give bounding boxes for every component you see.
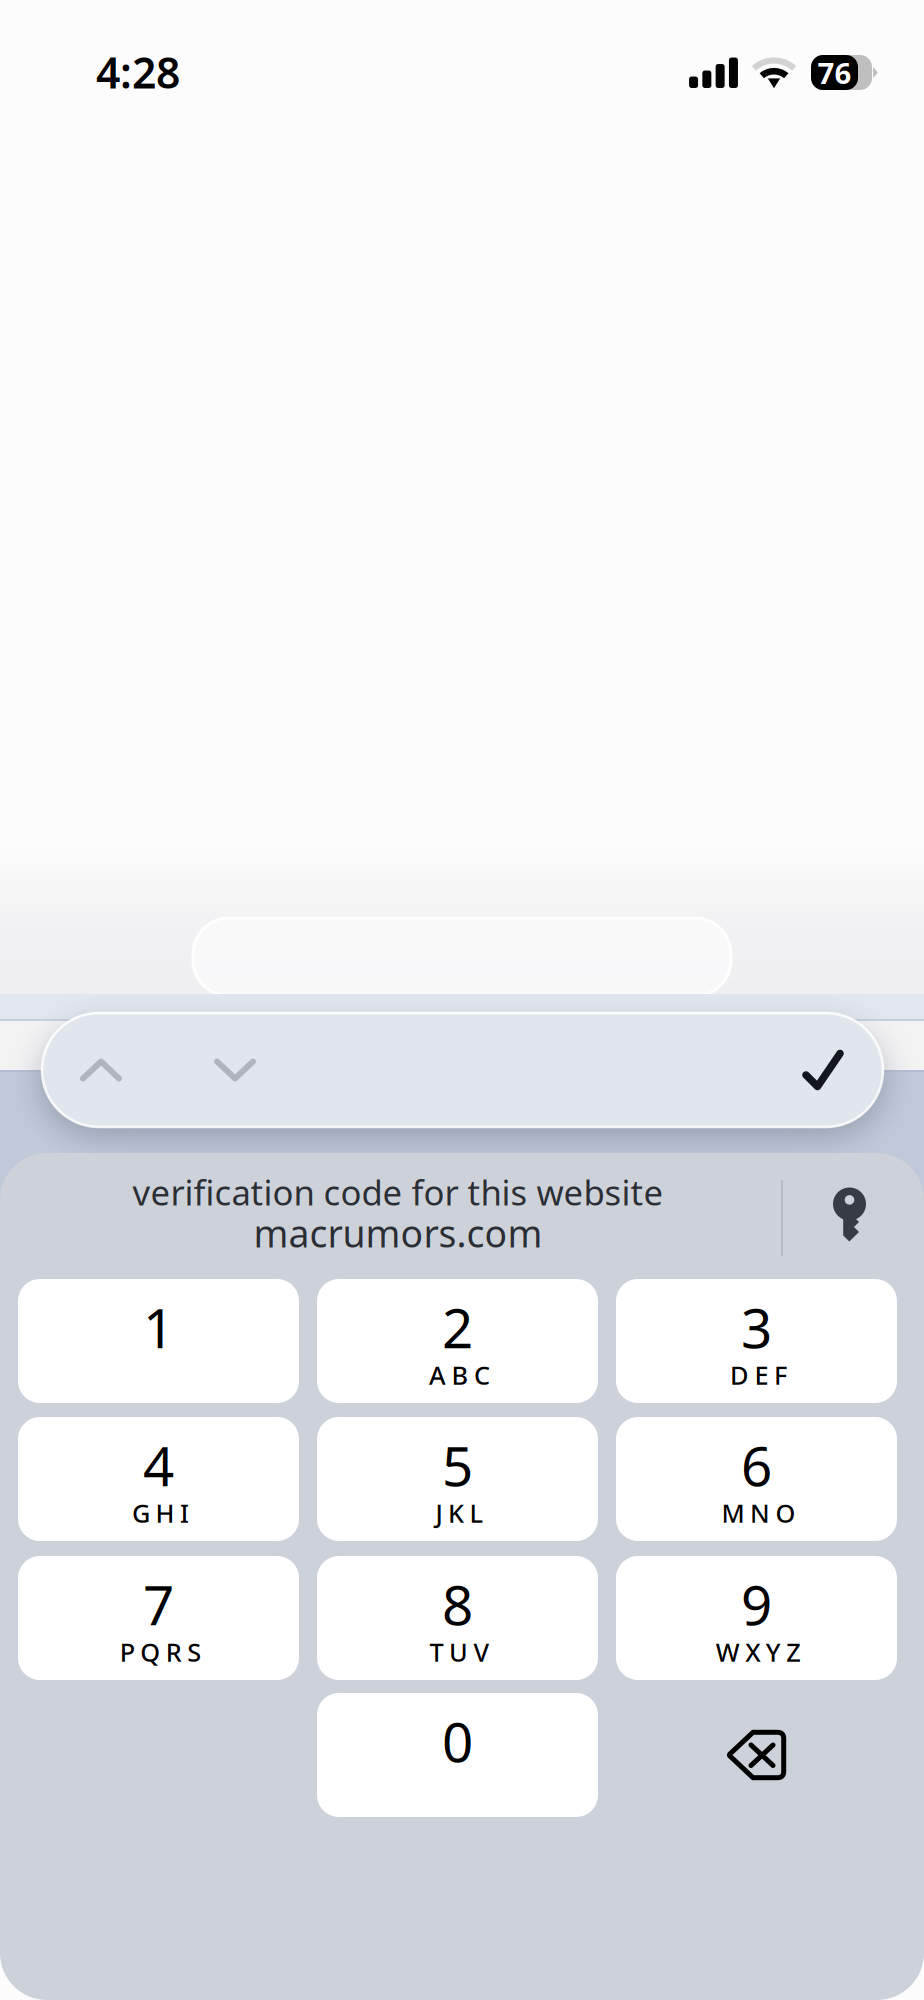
button[interactable]: 3 xyxy=(616,1279,897,1403)
button[interactable]: 7 xyxy=(18,1556,299,1680)
staticText: 8 xyxy=(442,1568,473,1640)
button[interactable]: Delete xyxy=(616,1693,897,1817)
staticText: MNO xyxy=(721,1496,795,1530)
staticText: 9 xyxy=(741,1568,772,1640)
button[interactable]: 0 xyxy=(317,1693,598,1817)
button[interactable]: 2 xyxy=(317,1279,598,1403)
staticText: WXYZ xyxy=(716,1635,801,1669)
staticText: 6 xyxy=(741,1429,772,1501)
staticText: 0 xyxy=(442,1705,473,1777)
staticText: verification code for this website xyxy=(132,1169,663,1215)
staticText: 2 xyxy=(442,1291,473,1363)
staticText: 3 xyxy=(741,1291,772,1363)
staticText: TUV xyxy=(429,1635,489,1669)
staticText: GHI xyxy=(132,1496,189,1530)
button[interactable]: 1 xyxy=(18,1279,299,1403)
staticText: PQRS xyxy=(120,1635,201,1669)
button[interactable]: Next field xyxy=(180,1013,290,1127)
button[interactable]: 9 xyxy=(616,1556,897,1680)
staticText: 76 xyxy=(817,53,851,92)
staticText: 4 xyxy=(143,1429,174,1501)
staticText: macrumors.com xyxy=(253,1208,542,1258)
button[interactable]: Previous field xyxy=(46,1013,156,1127)
button[interactable]: 6 xyxy=(616,1417,897,1541)
button[interactable]: Done xyxy=(763,1013,883,1127)
staticText: 7 xyxy=(143,1568,174,1640)
button[interactable]: 4 xyxy=(18,1417,299,1541)
staticText: JKL xyxy=(435,1496,483,1530)
staticText: 5 xyxy=(442,1429,473,1501)
button[interactable]: 5 xyxy=(317,1417,598,1541)
staticText: 4:28 xyxy=(96,44,180,100)
staticText: 1 xyxy=(143,1291,174,1363)
staticText: ABC xyxy=(429,1358,490,1392)
staticText: DEF xyxy=(730,1358,787,1392)
button[interactable]: 8 xyxy=(317,1556,598,1680)
button[interactable]: Passwords xyxy=(795,1161,905,1271)
